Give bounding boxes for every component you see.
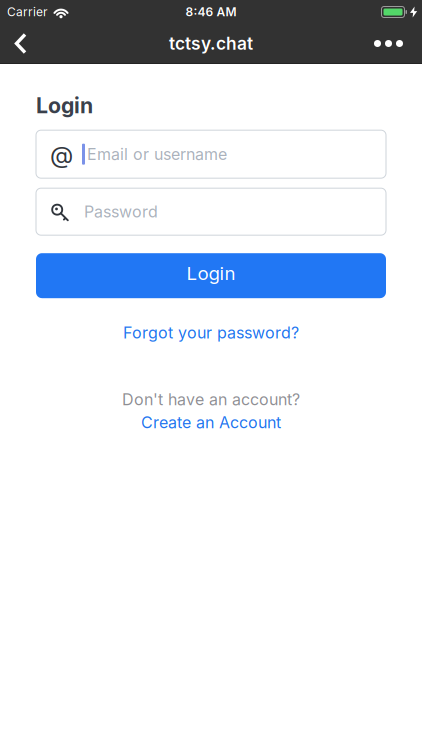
staticText: Email or username (87, 145, 227, 164)
staticText: Login (36, 93, 93, 118)
staticText: Carrier (7, 5, 48, 19)
staticText: Don't have an account? (122, 390, 300, 409)
button[interactable]: Back (0, 24, 39, 63)
staticText: @ (50, 140, 73, 168)
staticText: Forgot your password? (123, 323, 299, 342)
staticText: 8:46 AM (185, 5, 236, 19)
staticText: Create an Account (141, 413, 281, 432)
staticText: tctsy.chat (169, 33, 253, 54)
staticText: Login (186, 262, 235, 284)
button[interactable]: Create an Account (141, 413, 281, 432)
button[interactable]: More (362, 24, 422, 63)
staticText: Password (84, 202, 158, 221)
button[interactable]: Forgot your password? (123, 323, 299, 342)
button[interactable]: Login (36, 253, 386, 298)
